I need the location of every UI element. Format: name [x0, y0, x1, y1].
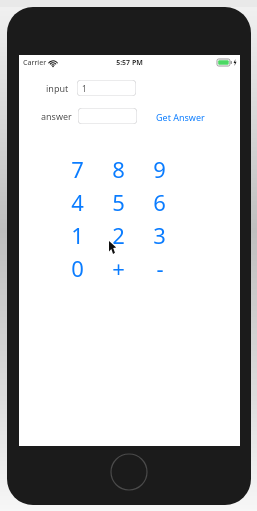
- button[interactable]: [78, 108, 137, 124]
- staticText: 3: [153, 220, 166, 250]
- staticText: 4: [71, 187, 84, 217]
- button[interactable]: 7: [57, 152, 98, 185]
- button[interactable]: -: [139, 251, 180, 284]
- button[interactable]: 4: [57, 185, 98, 218]
- staticText: 9: [153, 154, 166, 184]
- staticText: input: [46, 82, 69, 94]
- staticText: 2: [112, 220, 125, 250]
- button[interactable]: Get Answer: [154, 109, 207, 125]
- staticText: Get Answer: [156, 111, 205, 123]
- button[interactable]: 6: [139, 185, 180, 218]
- staticText: 5:57 PM: [116, 58, 143, 68]
- button[interactable]: 1: [57, 218, 98, 251]
- staticText: -: [156, 253, 164, 283]
- button[interactable]: 9: [139, 152, 180, 185]
- staticText: 7: [71, 154, 84, 184]
- staticText: answer: [41, 110, 72, 122]
- staticText: +: [112, 253, 125, 283]
- staticText: 5: [112, 187, 125, 217]
- button[interactable]: 8: [98, 152, 139, 185]
- staticText: Carrier: [23, 58, 47, 68]
- button[interactable]: 1: [77, 80, 136, 96]
- button[interactable]: 0: [57, 251, 98, 284]
- button[interactable]: +: [98, 251, 139, 284]
- staticText: 6: [153, 187, 166, 217]
- staticText: 8: [112, 154, 125, 184]
- staticText: 1: [82, 83, 87, 94]
- button[interactable]: 2: [98, 218, 139, 251]
- staticText: 1: [71, 220, 84, 250]
- button[interactable]: 5: [98, 185, 139, 218]
- button[interactable]: 3: [139, 218, 180, 251]
- staticText: 0: [71, 253, 84, 283]
- button[interactable]: Home: [110, 453, 148, 491]
